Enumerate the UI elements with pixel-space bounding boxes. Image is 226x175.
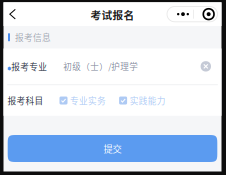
staticText: 初级（士）/护理学 — [63, 60, 138, 73]
staticText: 考试报名 — [90, 7, 134, 22]
staticText: 报考科目 — [7, 94, 43, 107]
button[interactable]: 清除 — [201, 61, 211, 71]
button[interactable]: 专业实务 — [59, 94, 106, 107]
button[interactable]: 关闭 — [194, 6, 217, 22]
button[interactable]: 返回 — [5, 3, 20, 25]
staticText: 提交 — [103, 142, 121, 155]
button[interactable]: 更多 — [167, 6, 193, 22]
button[interactable]: 实践能力 — [119, 94, 166, 107]
staticText: 专业实务 — [70, 94, 106, 107]
staticText: 报考信息 — [15, 31, 51, 43]
button[interactable]: 提交 — [8, 135, 217, 162]
staticText: 报考专业 — [11, 60, 47, 73]
staticText: 实践能力 — [130, 94, 166, 107]
